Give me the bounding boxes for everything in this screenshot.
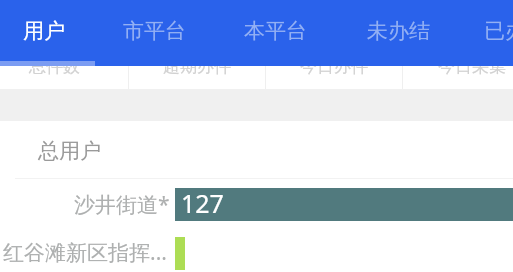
staticText: 本平台 [244, 18, 307, 44]
staticText: 今日办件 [300, 56, 368, 77]
staticText: 总件数 [29, 56, 80, 77]
staticText: 用户 [23, 18, 65, 44]
button[interactable]: 用户 [0, 0, 92, 61]
button[interactable]: 已办结 [461, 0, 513, 61]
button[interactable]: 沙井街道* [0, 188, 170, 221]
staticText: 红谷滩新区指挥... [3, 238, 167, 267]
button[interactable]: 未办结 [344, 0, 452, 61]
button[interactable]: 沙井街道 127 [175, 188, 513, 221]
staticText: 超期办件 [163, 56, 231, 77]
staticText: 已办结 [484, 18, 513, 44]
staticText: 127 [181, 186, 224, 219]
button[interactable]: 本平台 [221, 0, 329, 61]
staticText: 市平台 [123, 18, 186, 44]
button[interactable]: 市平台 [100, 0, 208, 61]
staticText: 总用户 [38, 138, 101, 164]
staticText: 沙井街道* [74, 190, 170, 219]
staticText: 今日采集 [438, 56, 506, 77]
button[interactable]: 超期办件 [129, 0, 265, 89]
staticText: 未办结 [367, 18, 430, 44]
button[interactable]: 总件数 [0, 0, 123, 89]
button[interactable]: 今日采集 [403, 0, 513, 89]
button[interactable]: 红谷滩新区指挥... [0, 237, 167, 270]
button[interactable]: 今日办件 [266, 0, 402, 89]
